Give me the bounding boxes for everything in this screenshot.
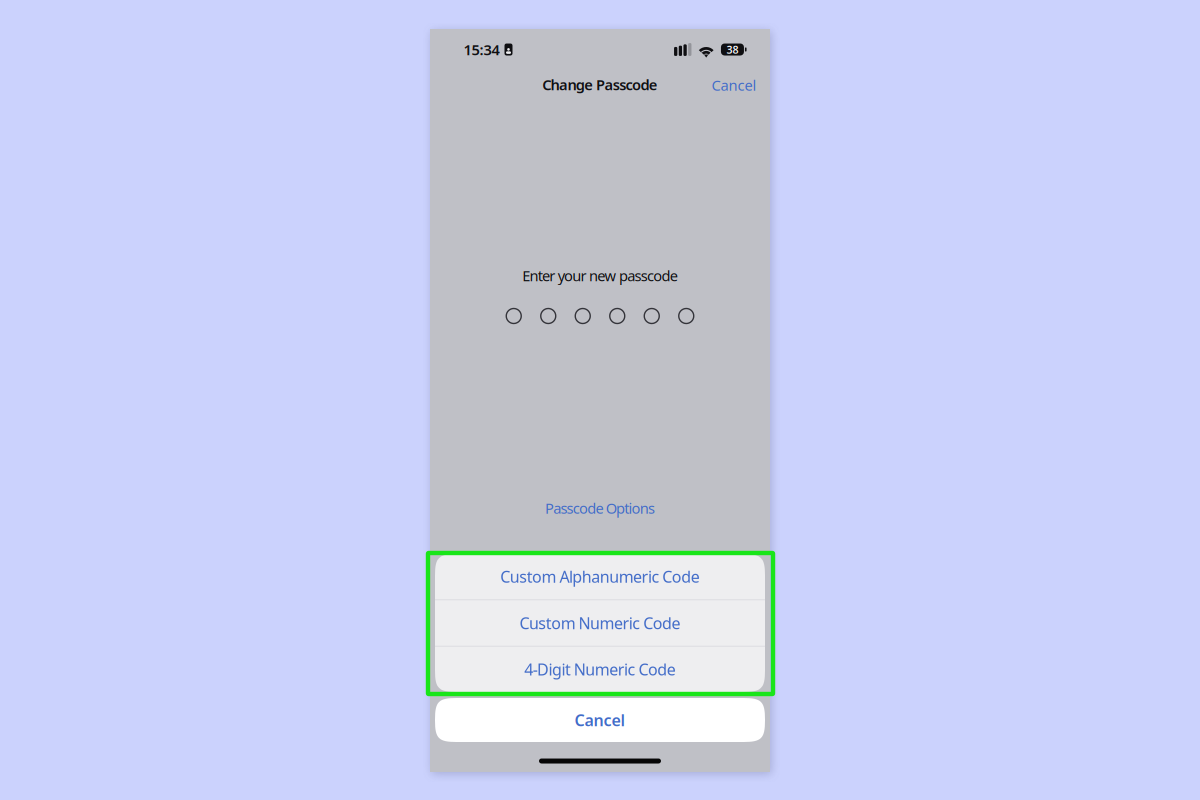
staticText: Custom Alphanumeric Code bbox=[500, 566, 700, 587]
staticText: Change Passcode bbox=[542, 75, 658, 94]
staticText: 38 bbox=[726, 42, 738, 57]
staticText: Cancel bbox=[574, 709, 625, 731]
staticText: Cancel bbox=[711, 75, 756, 95]
staticText: Passcode Options bbox=[545, 498, 655, 518]
button[interactable]: Passcode Options bbox=[529, 488, 671, 528]
button[interactable]: Cancel bbox=[435, 698, 765, 742]
staticText: Enter your new passcode bbox=[522, 266, 678, 285]
button[interactable]: 4-Digit Numeric Code bbox=[435, 647, 765, 692]
button[interactable]: Custom Alphanumeric Code bbox=[435, 554, 765, 599]
staticText: 4-Digit Numeric Code bbox=[524, 659, 676, 680]
button[interactable]: Cancel bbox=[700, 66, 767, 104]
button[interactable]: Custom Numeric Code bbox=[435, 600, 765, 646]
staticText: Custom Numeric Code bbox=[519, 612, 680, 634]
staticText: 15:34 bbox=[463, 40, 499, 59]
